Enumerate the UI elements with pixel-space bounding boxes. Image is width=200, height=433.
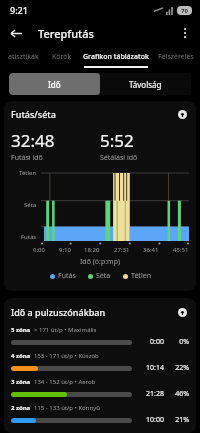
staticText: Tétlen xyxy=(131,271,151,281)
staticText: 153 - 171 üt/p • Küszöb xyxy=(34,352,99,360)
staticText: Körök xyxy=(52,52,72,62)
button[interactable]: Felszerelés xyxy=(152,46,200,68)
staticText: Séta xyxy=(96,271,111,281)
staticText: 9:10 xyxy=(59,246,71,254)
button[interactable]: Back xyxy=(5,22,27,44)
staticText: 4 zóna xyxy=(11,352,31,360)
staticText: Futás xyxy=(21,233,37,241)
staticText: Tétlen xyxy=(19,169,37,177)
staticText: 36:41 xyxy=(143,246,159,254)
staticText: 0:00 xyxy=(138,337,164,347)
button[interactable]: More options xyxy=(174,22,196,44)
button[interactable]: Távolság xyxy=(100,73,191,95)
button[interactable]: Körök xyxy=(44,46,80,68)
staticText: 21:28 xyxy=(138,389,164,399)
staticText: Grafikon táblázatok xyxy=(83,52,149,62)
staticText: Séta xyxy=(24,201,37,209)
staticText: 22% xyxy=(169,363,189,373)
staticText: Idő a pulzuszónákban xyxy=(11,306,175,318)
button[interactable]: atisztikák xyxy=(0,46,44,68)
button[interactable]: Idő xyxy=(9,73,100,95)
staticText: 10:14 xyxy=(138,363,164,373)
staticText: Futási idő xyxy=(11,153,43,163)
staticText: 70 xyxy=(181,7,188,15)
staticText: Terepfutás xyxy=(38,26,94,41)
staticText: Sétálási idő xyxy=(100,153,138,163)
staticText: 18:20 xyxy=(84,246,100,254)
staticText: 5:52 xyxy=(100,129,134,152)
staticText: Idő (ó:p:mp) xyxy=(11,257,189,267)
staticText: 9:21 xyxy=(10,4,28,16)
staticText: Futás/séta xyxy=(11,108,175,120)
button[interactable]: Információ a pulzuszónákról xyxy=(175,305,189,319)
staticText: 0:00 xyxy=(33,246,45,254)
staticText: Felszerelés xyxy=(158,52,194,62)
staticText: Futás xyxy=(58,271,76,281)
button[interactable]: Információ a futás és séta adatokról xyxy=(175,107,189,121)
staticText: 21% xyxy=(169,415,189,425)
staticText: 0% xyxy=(169,337,189,347)
staticText: 5 zóna xyxy=(11,326,31,334)
staticText: > 171 üt/p • Maximális xyxy=(34,326,97,334)
staticText: 134 - 152 üt/p • Aerob xyxy=(34,378,96,386)
staticText: 46% xyxy=(169,389,189,399)
staticText: 2 zóna xyxy=(11,404,31,412)
staticText: 115 - 133 üt/p • Könnyű xyxy=(34,404,100,412)
staticText: 3 zóna xyxy=(11,378,31,386)
staticText: Idő xyxy=(48,79,61,90)
button[interactable]: Grafikon táblázatok xyxy=(80,46,152,68)
staticText: atisztikák xyxy=(8,52,39,62)
staticText: 45:51 xyxy=(173,246,189,254)
staticText: 32:48 xyxy=(11,129,55,152)
staticText: Távolság xyxy=(129,79,162,90)
staticText: 10:00 xyxy=(138,415,164,425)
staticText: 27:31 xyxy=(114,246,130,254)
